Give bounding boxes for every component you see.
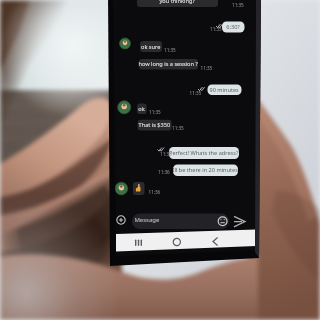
- button[interactable]: Chat conversation on phone: [0, 0, 320, 320]
